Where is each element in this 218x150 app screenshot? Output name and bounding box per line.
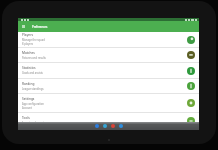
button[interactable]: Settings: [18, 94, 199, 113]
button[interactable]: Matches: [18, 48, 199, 63]
button[interactable]: Messages: [103, 124, 107, 128]
staticText: Import and export: [22, 121, 45, 125]
button[interactable]: Phone: [95, 124, 99, 128]
button[interactable]: Ranking: [18, 79, 199, 94]
button[interactable]: Tools: [18, 113, 199, 129]
button[interactable]: Camera: [119, 124, 123, 128]
staticText: Preferences: [32, 25, 48, 29]
staticText: Fixtures and results: [22, 56, 46, 60]
button[interactable]: Browser: [111, 124, 115, 128]
button[interactable]: Players: [18, 32, 199, 48]
staticText: Account: [22, 106, 32, 110]
staticText: Tools: [22, 116, 30, 120]
button[interactable]: Navigate up: [19, 22, 28, 31]
staticText: Matches: [22, 51, 35, 55]
button[interactable]: Statistics: [18, 63, 199, 79]
staticText: Statistics: [22, 66, 36, 70]
staticText: League standings: [22, 87, 44, 91]
staticText: Settings: [22, 97, 35, 101]
staticText: 8 players: [22, 42, 33, 46]
staticText: Goals and assists: [22, 71, 43, 75]
staticText: App configuration: [22, 102, 44, 106]
staticText: Manage the squad: [22, 38, 45, 42]
staticText: Ranking: [22, 82, 35, 86]
staticText: Players: [22, 33, 34, 37]
